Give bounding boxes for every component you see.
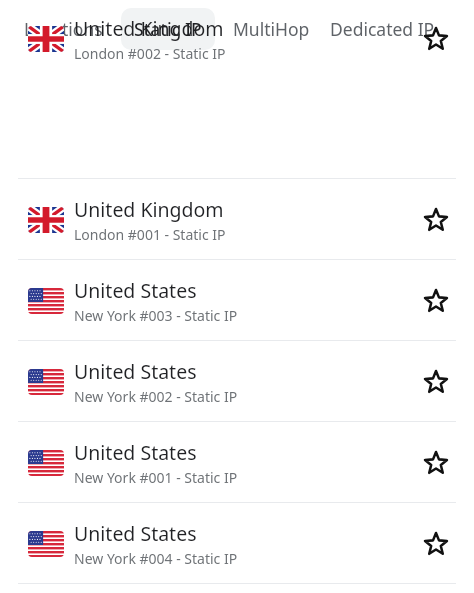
button[interactable]: Static IP bbox=[121, 8, 215, 50]
staticText: United States bbox=[74, 520, 197, 547]
staticText: New York #004 - Static IP bbox=[74, 549, 238, 568]
staticText: London #002 - Static IP bbox=[74, 44, 226, 63]
button[interactable]: United States bbox=[0, 422, 474, 503]
button[interactable]: United Kingdom bbox=[0, 58, 474, 179]
staticText: United Kingdom bbox=[74, 15, 224, 42]
button[interactable]: United States bbox=[0, 341, 474, 422]
button[interactable]: Add United States New York #001 - Static… bbox=[421, 448, 451, 478]
staticText: United States bbox=[74, 358, 197, 385]
button[interactable]: United States bbox=[0, 260, 474, 341]
button[interactable]: Add United States New York #002 - Static… bbox=[421, 367, 451, 397]
staticText: Static IP bbox=[134, 17, 202, 41]
button[interactable]: Locations bbox=[24, 8, 103, 50]
button[interactable]: Dedicated IP bbox=[330, 8, 435, 50]
staticText: London #001 - Static IP bbox=[74, 225, 226, 244]
staticText: New York #002 - Static IP bbox=[74, 387, 238, 406]
button[interactable]: MultiHop bbox=[233, 8, 310, 50]
button[interactable]: Add United States New York #003 - Static… bbox=[421, 286, 451, 316]
staticText: Dedicated IP bbox=[330, 17, 435, 41]
button[interactable]: Add United Kingdom London #002 - Static … bbox=[421, 24, 451, 54]
staticText: Locations bbox=[24, 17, 103, 41]
staticText: New York #003 - Static IP bbox=[74, 306, 238, 325]
button[interactable]: Add United Kingdom London #001 - Static … bbox=[421, 205, 451, 235]
staticText: United Kingdom bbox=[74, 196, 224, 223]
staticText: New York #001 - Static IP bbox=[74, 468, 238, 487]
staticText: MultiHop bbox=[233, 17, 310, 41]
button[interactable]: United States bbox=[0, 503, 474, 584]
staticText: United States bbox=[74, 439, 197, 466]
button[interactable]: United Kingdom bbox=[0, 179, 474, 260]
staticText: United States bbox=[74, 277, 197, 304]
button[interactable]: Add United States New York #004 - Static… bbox=[421, 529, 451, 559]
